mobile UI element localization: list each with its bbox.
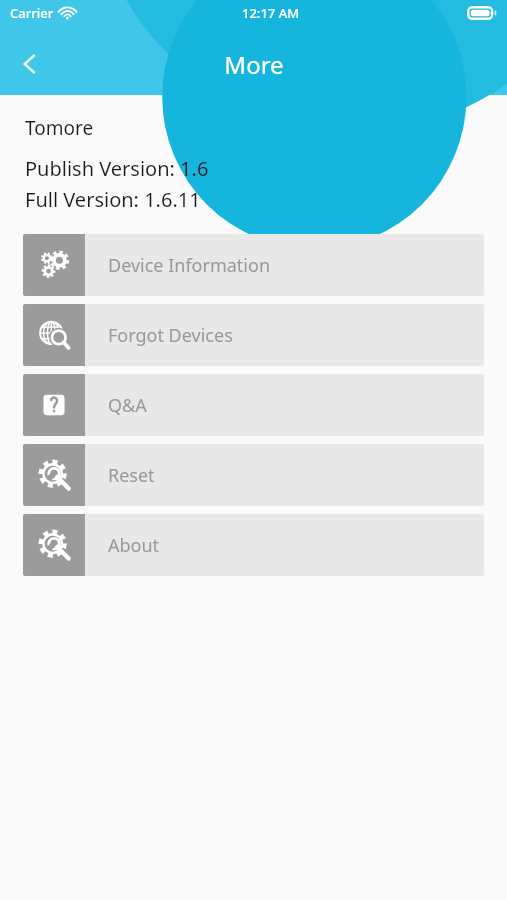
staticText: Device Information [108, 253, 271, 278]
button[interactable]: Q&A [23, 374, 484, 436]
staticText: 12:17 AM [242, 4, 300, 22]
button[interactable]: Reset [23, 444, 484, 506]
staticText: Carrier [10, 4, 54, 22]
staticText: More [224, 48, 284, 81]
staticText: Full Version: 1.6.11 [25, 186, 201, 213]
staticText: Forgot Devices [108, 323, 233, 348]
staticText: Q&A [108, 393, 147, 418]
staticText: About [108, 533, 160, 558]
button[interactable]: About [23, 514, 484, 576]
button[interactable]: Back [6, 40, 54, 88]
staticText: Reset [108, 463, 155, 488]
staticText: Publish Version: 1.6 [25, 155, 209, 182]
button[interactable]: Device Information [23, 234, 484, 296]
staticText: Tomore [25, 115, 94, 141]
button[interactable]: Forgot Devices [23, 304, 484, 366]
